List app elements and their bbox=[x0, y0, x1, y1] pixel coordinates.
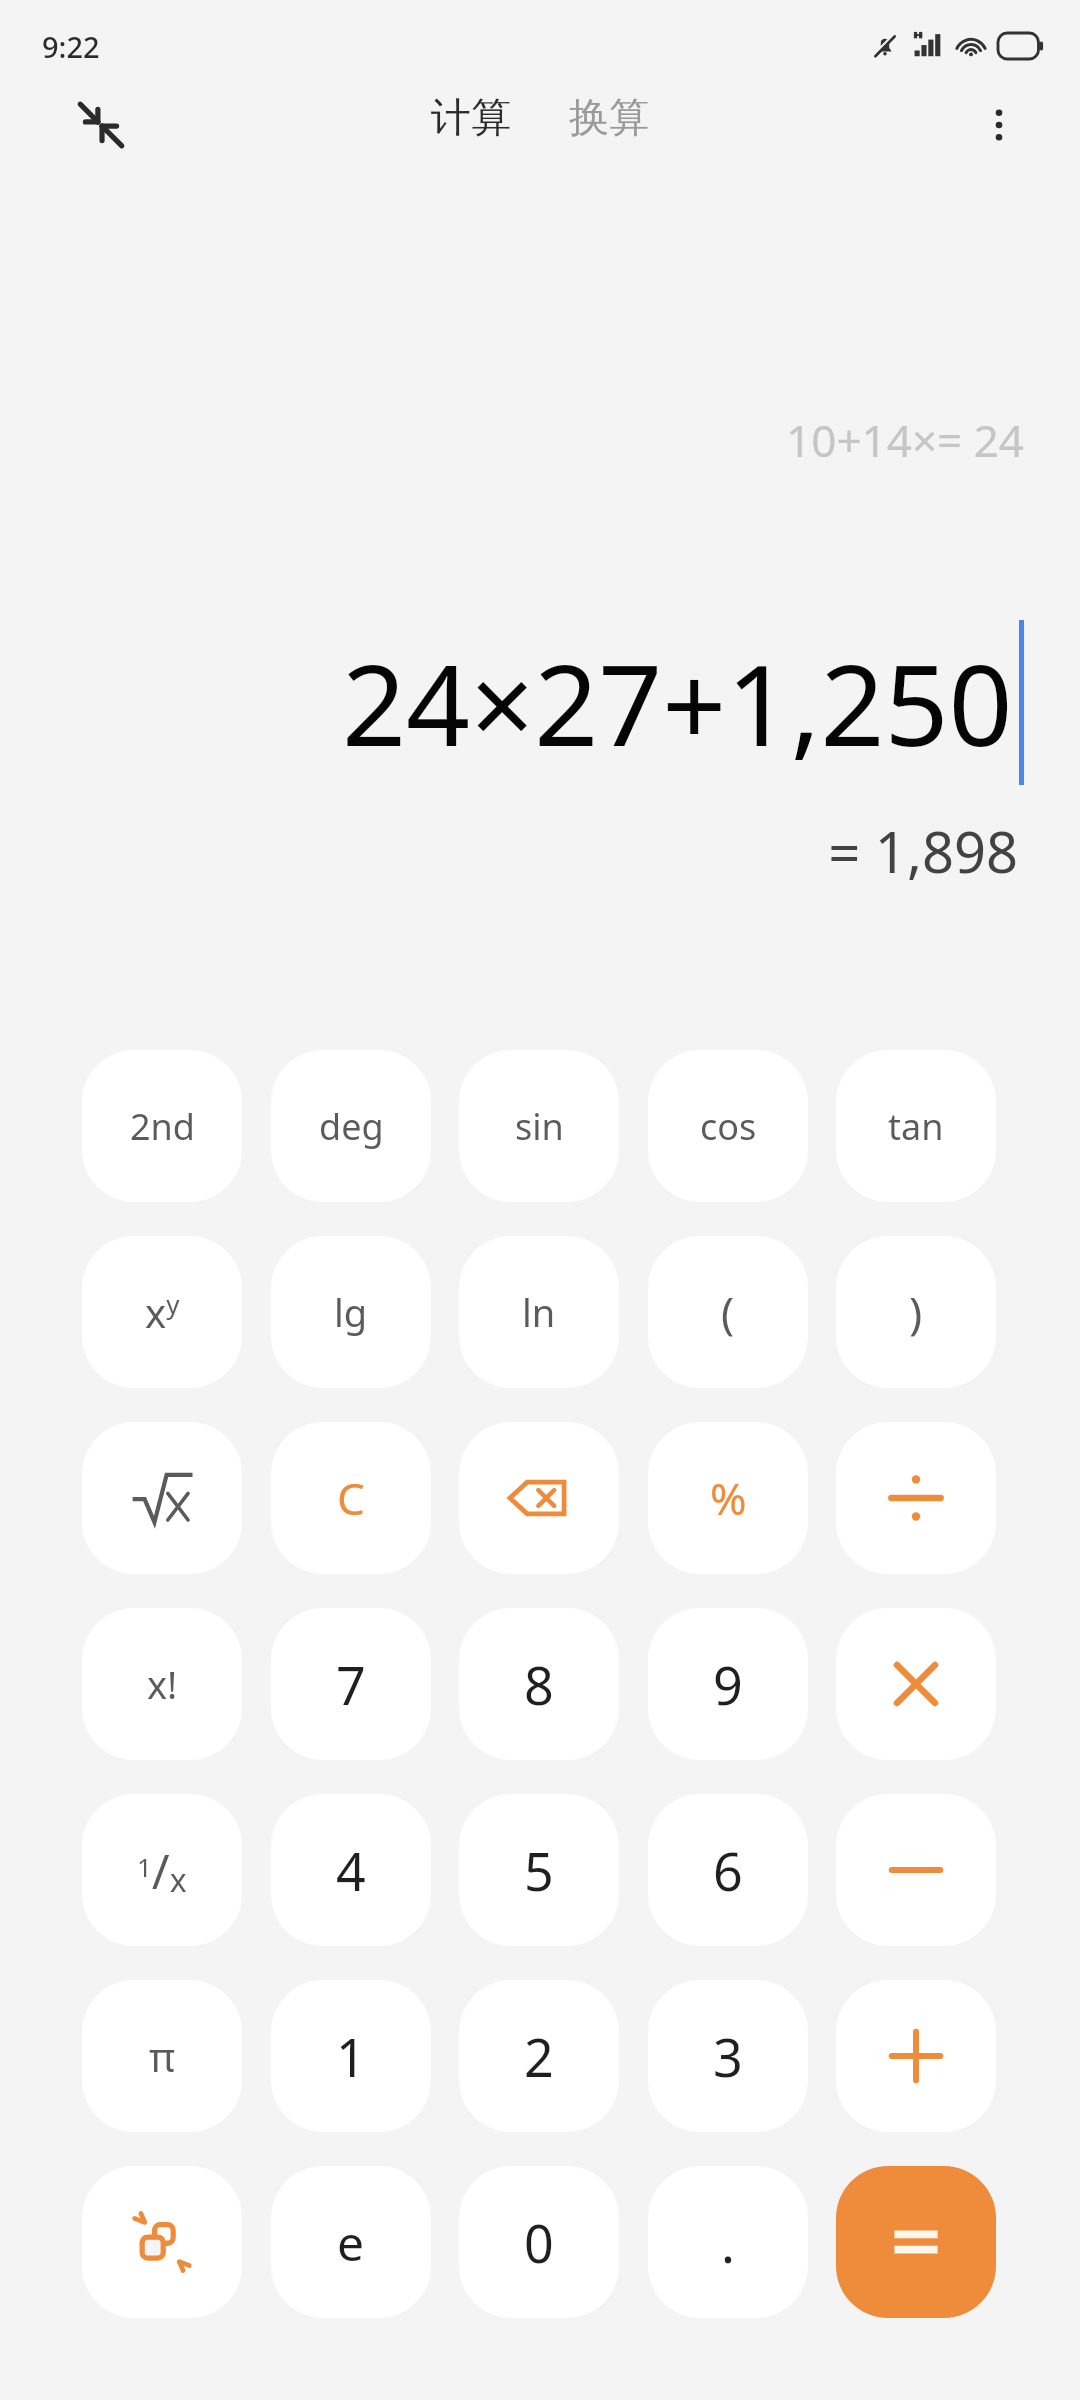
staticText: lg bbox=[334, 1286, 368, 1338]
button[interactable]: e bbox=[271, 2166, 431, 2318]
button[interactable]: ( bbox=[648, 1236, 808, 1388]
staticText: e bbox=[337, 2210, 365, 2275]
button[interactable]: Plus bbox=[836, 1980, 996, 2132]
button[interactable]: 0 bbox=[459, 2166, 619, 2318]
staticText: 2 bbox=[524, 2021, 554, 2092]
staticText: 9 bbox=[713, 1649, 743, 1720]
button[interactable]: cos bbox=[648, 1050, 808, 1202]
staticText: π bbox=[149, 2029, 176, 2083]
button[interactable]: 2 bbox=[459, 1980, 619, 2132]
button[interactable]: x! bbox=[82, 1608, 242, 1760]
button[interactable]: tan bbox=[836, 1050, 996, 1202]
staticText: deg bbox=[319, 1102, 384, 1151]
button[interactable]: Equals bbox=[836, 2166, 996, 2318]
staticText: 5 bbox=[524, 1835, 554, 1906]
staticText: x! bbox=[147, 1658, 178, 1710]
staticText: . bbox=[721, 2207, 735, 2278]
staticText: 8 bbox=[524, 1649, 554, 1720]
button[interactable]: 4 bbox=[271, 1794, 431, 1946]
staticText: % bbox=[710, 1468, 747, 1528]
staticText: ) bbox=[909, 1282, 923, 1342]
button[interactable]: % bbox=[648, 1422, 808, 1574]
button[interactable]: Formulas bbox=[82, 2166, 242, 2318]
button[interactable]: Collapse bbox=[62, 86, 140, 164]
button[interactable]: deg bbox=[271, 1050, 431, 1202]
button[interactable]: 9 bbox=[648, 1608, 808, 1760]
button[interactable]: Divide bbox=[836, 1422, 996, 1574]
staticText: 1/x bbox=[137, 1838, 187, 1903]
button[interactable]: 1/x bbox=[82, 1794, 242, 1946]
button[interactable]: Backspace bbox=[459, 1422, 619, 1574]
staticText: 10+14×= 24 bbox=[0, 410, 1024, 470]
staticText: 3 bbox=[713, 2021, 743, 2092]
button[interactable]: 计算 bbox=[417, 84, 525, 150]
staticText: 1 bbox=[336, 2021, 366, 2092]
staticText: cos bbox=[700, 1102, 757, 1151]
staticText: xy bbox=[145, 1285, 180, 1339]
button[interactable]: ) bbox=[836, 1236, 996, 1388]
button[interactable]: 换算 bbox=[555, 84, 663, 150]
staticText: 4 bbox=[336, 1835, 366, 1906]
button[interactable]: C bbox=[271, 1422, 431, 1574]
button[interactable]: 7 bbox=[271, 1608, 431, 1760]
staticText: 6 bbox=[713, 1835, 743, 1906]
button[interactable]: 3 bbox=[648, 1980, 808, 2132]
button[interactable]: . bbox=[648, 2166, 808, 2318]
staticText: = 1,898 bbox=[0, 813, 1018, 889]
staticText: sin bbox=[515, 1102, 564, 1151]
button[interactable]: Minus bbox=[836, 1794, 996, 1946]
staticText: C bbox=[337, 1468, 365, 1528]
button[interactable]: More options bbox=[960, 86, 1038, 164]
button[interactable]: π bbox=[82, 1980, 242, 2132]
button[interactable]: Square root bbox=[82, 1422, 242, 1574]
button[interactable]: 8 bbox=[459, 1608, 619, 1760]
button[interactable]: sin bbox=[459, 1050, 619, 1202]
staticText: 2nd bbox=[130, 1102, 195, 1151]
staticText: ln bbox=[522, 1286, 556, 1338]
button[interactable]: lg bbox=[271, 1236, 431, 1388]
staticText: ( bbox=[721, 1282, 735, 1342]
button[interactable]: Multiply bbox=[836, 1608, 996, 1760]
button[interactable]: 5 bbox=[459, 1794, 619, 1946]
button[interactable]: 2nd bbox=[82, 1050, 242, 1202]
staticText: 换算 bbox=[569, 92, 649, 142]
staticText: 7 bbox=[336, 1649, 366, 1720]
button[interactable]: 1 bbox=[271, 1980, 431, 2132]
staticText: 24×27+1,250 bbox=[342, 626, 1013, 779]
staticText: 9:22 bbox=[42, 27, 100, 66]
staticText: 计算 bbox=[431, 92, 511, 142]
staticText: 0 bbox=[524, 2207, 554, 2278]
button[interactable]: xy bbox=[82, 1236, 242, 1388]
button[interactable]: 6 bbox=[648, 1794, 808, 1946]
button[interactable]: ln bbox=[459, 1236, 619, 1388]
staticText: tan bbox=[888, 1102, 944, 1151]
